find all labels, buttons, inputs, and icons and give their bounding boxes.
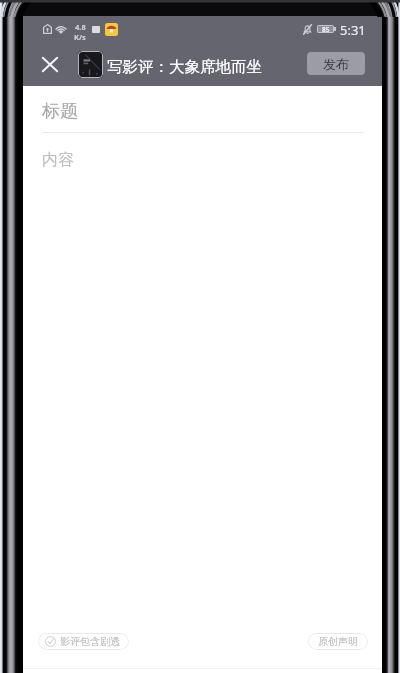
staticText: 4.8 — [75, 22, 86, 32]
button[interactable]: 影评包含剧透 — [38, 633, 129, 650]
staticText: 写影评：大象席地而坐 — [107, 57, 262, 77]
button[interactable]: Close — [35, 49, 65, 79]
staticText: 标题 — [42, 100, 78, 123]
staticText: 影评包含剧透 — [60, 635, 120, 648]
staticText: K/s — [74, 32, 86, 42]
staticText: 内容 — [42, 150, 74, 170]
staticText: 5:31 — [340, 21, 366, 39]
staticText: 发布 — [323, 56, 349, 72]
button[interactable]: 原创声明 — [308, 633, 368, 650]
button[interactable]: 发布 — [307, 52, 365, 75]
staticText: 原创声明 — [318, 635, 358, 648]
staticText: 85 — [322, 25, 330, 33]
